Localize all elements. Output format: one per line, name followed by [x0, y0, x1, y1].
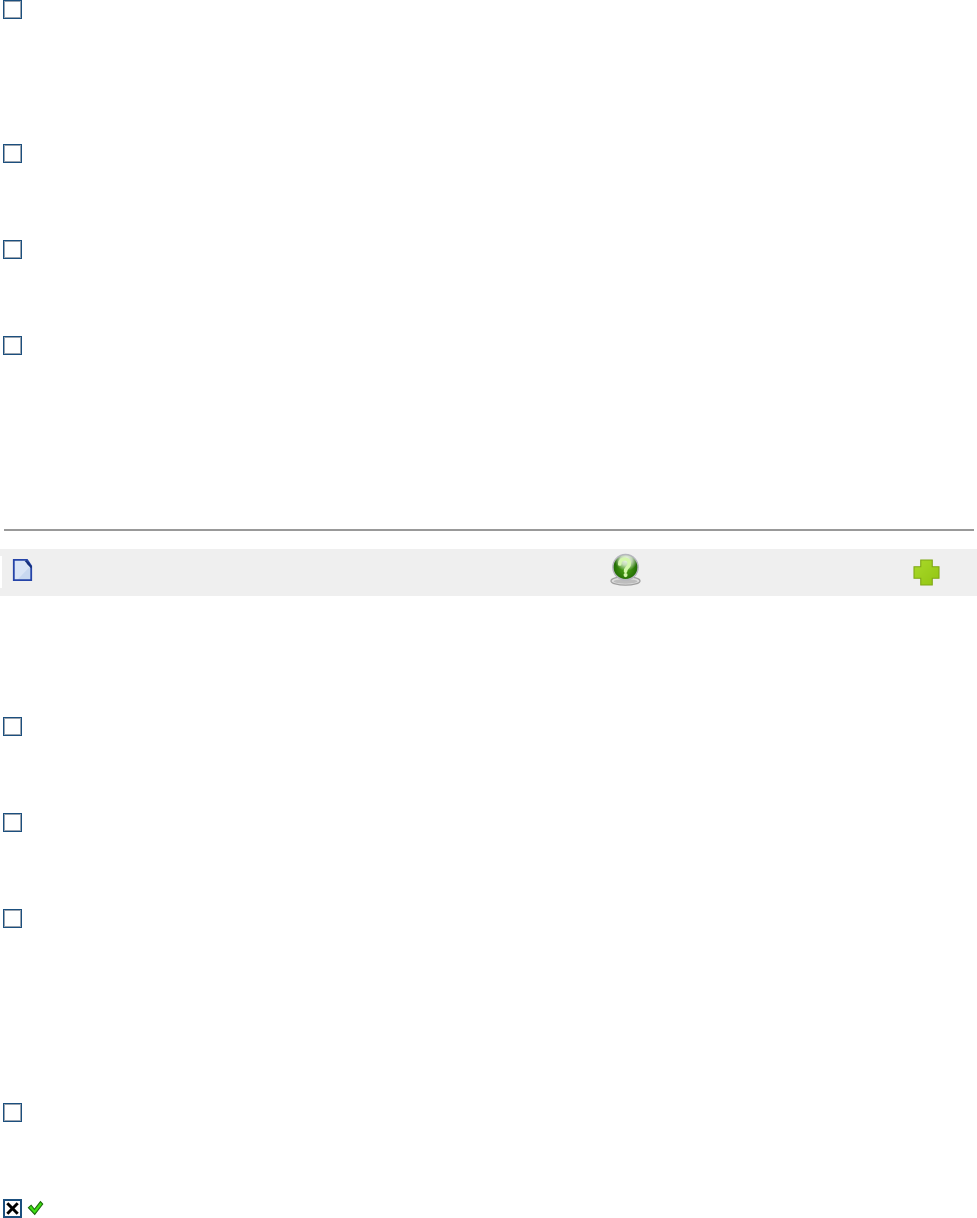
button[interactable]: Image placeholder [3, 0, 22, 19]
button[interactable]: Image placeholder [3, 717, 22, 736]
button[interactable]: Add [914, 560, 939, 585]
button[interactable]: Image placeholder [3, 336, 22, 355]
button[interactable]: Image placeholder [3, 240, 22, 259]
button[interactable]: Image placeholder [3, 144, 22, 163]
button[interactable]: Valid [28, 1201, 43, 1215]
button[interactable]: Broken image [3, 1199, 22, 1218]
button[interactable]: Image placeholder [3, 813, 22, 832]
button[interactable]: Help [611, 553, 640, 584]
button[interactable]: Image placeholder [3, 909, 22, 928]
button[interactable]: Image placeholder [3, 1103, 22, 1122]
button[interactable]: Document [13, 559, 32, 581]
